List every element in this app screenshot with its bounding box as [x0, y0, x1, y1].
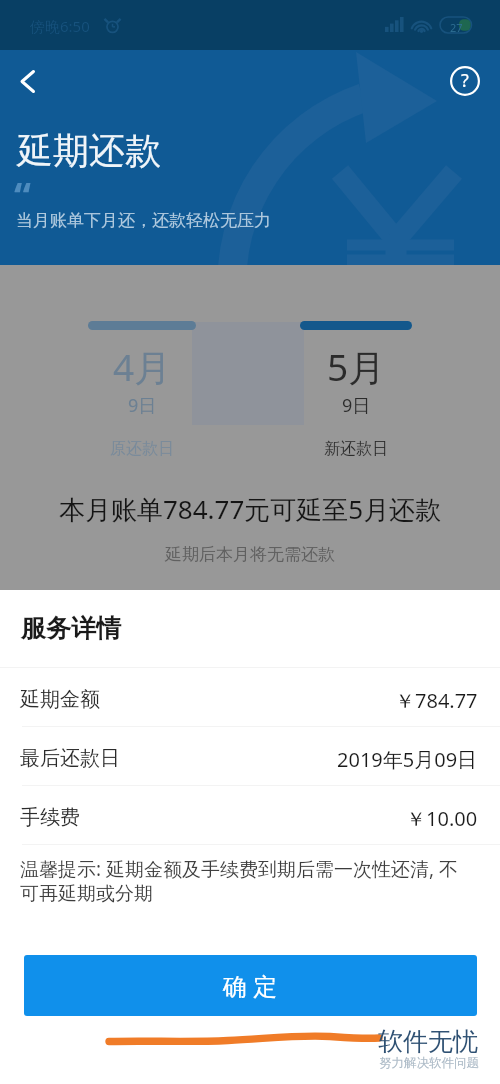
staticText: 手续费 — [20, 805, 80, 830]
button[interactable]: Back — [7, 61, 47, 101]
staticText: 延期金额 — [20, 687, 100, 712]
staticText: 5月 — [327, 341, 386, 392]
staticText: 9日 — [128, 393, 157, 418]
staticText: 确 定 — [223, 969, 278, 1002]
staticText: 服务详情 — [21, 613, 121, 644]
staticText: 傍晚6:50 — [30, 16, 90, 36]
staticText: 软件无忧 — [378, 1026, 478, 1057]
button[interactable]: 确 定 — [24, 955, 477, 1016]
staticText: 延期还款 — [17, 128, 161, 173]
staticText: 2019年5月09日 — [337, 746, 478, 773]
staticText: 4月 — [113, 341, 172, 392]
staticText: 延期后本月将无需还款 — [165, 544, 335, 565]
staticText: 27 — [450, 20, 463, 35]
staticText: ? — [461, 68, 469, 93]
staticText: 本月账单784.77元可延至5月还款 — [59, 491, 442, 527]
button[interactable]: Help — [445, 61, 485, 101]
staticText: 温馨提示: 延期金额及手续费到期后需一次性还清, 不可再延期或分期 — [20, 856, 476, 906]
staticText: ￥784.77 — [395, 687, 478, 714]
staticText: 努力解决软件问题 — [379, 1055, 479, 1071]
staticText: ￥10.00 — [406, 805, 478, 832]
staticText: 原还款日 — [110, 439, 174, 459]
staticText: 最后还款日 — [20, 746, 120, 771]
staticText: 9日 — [342, 393, 371, 418]
staticText: “ — [14, 169, 31, 221]
staticText: 新还款日 — [324, 439, 388, 459]
staticText: 当月账单下月还，还款轻松无压力 — [16, 210, 271, 231]
